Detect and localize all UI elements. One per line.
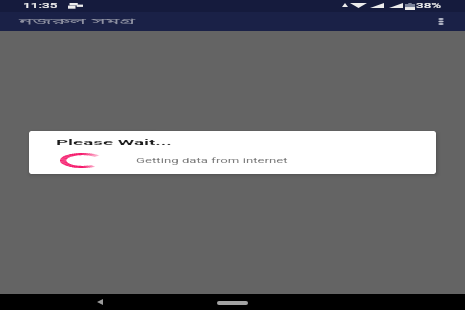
- button[interactable]: Back: [92, 294, 108, 310]
- staticText: Please Wait...: [56, 138, 173, 147]
- staticText: 38%: [416, 2, 441, 10]
- button[interactable]: Home: [217, 301, 248, 305]
- staticText: Getting data from internet: [136, 157, 289, 164]
- staticText: 11:35: [23, 2, 59, 10]
- staticText: নজরুল সমগ্র: [19, 17, 137, 28]
- button[interactable]: More options: [432, 12, 450, 30]
